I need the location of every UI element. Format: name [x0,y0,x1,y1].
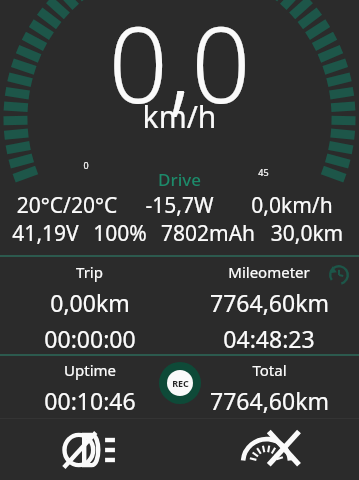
staticText: Mileometer [228,262,310,282]
staticText: 100% [85,219,155,247]
staticText: -15,7W [128,191,231,219]
staticText: 41,19V [6,219,85,247]
staticText: 0,00km [50,287,130,318]
staticText: 30,0km [261,219,353,247]
staticText: Trip [76,262,103,282]
staticText: 7764,60km [210,385,329,416]
staticText: 00:10:46 [44,385,136,416]
button[interactable]: Reset history [324,260,354,290]
staticText: 0 [83,159,89,171]
button[interactable]: Total [179,356,359,418]
staticText: 7764,60km [210,287,329,318]
staticText: Total [252,360,287,380]
staticText: 00:00:00 [44,323,136,354]
button[interactable]: Trip [0,257,179,354]
button[interactable]: Headlight off [0,419,179,480]
button[interactable]: Record [159,362,201,404]
staticText: 04:48:23 [223,323,315,354]
staticText: 7802mAh [155,219,261,247]
button[interactable]: Mileometer [179,257,359,354]
staticText: 0,0km/h [231,191,353,219]
staticText: 20°C/20°C [6,191,128,219]
button[interactable]: Cruise control off [179,419,359,480]
staticText: Drive [0,168,359,191]
staticText: km/h [0,96,359,137]
staticText: REC [172,377,189,389]
staticText: Uptime [64,360,116,380]
staticText: 45 [258,166,269,178]
button[interactable]: Uptime [0,356,179,418]
staticText: 0,0 [0,0,359,134]
